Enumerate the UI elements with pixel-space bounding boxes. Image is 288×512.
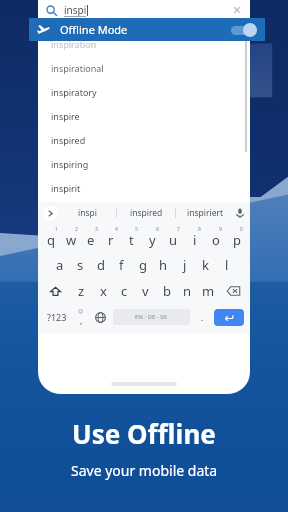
button[interactable]: j [174,252,195,278]
button[interactable]: d [90,252,111,278]
button[interactable]: 8 [184,224,205,252]
staticText: e [87,231,95,249]
staticText: h [159,256,168,274]
button[interactable]: x [92,278,114,304]
staticText: Offline Mode [60,22,128,37]
button[interactable]: inspiring [38,152,250,176]
staticText: inspiration [51,38,97,50]
staticText: , [80,314,83,326]
staticText: inspired [130,207,163,219]
button[interactable]: Airplane mode [29,18,265,41]
staticText: v [142,282,149,300]
staticText: Use Offline [72,416,216,451]
staticText: 4 [115,226,118,233]
staticText: 7 [177,226,180,233]
button[interactable]: f [111,252,132,278]
button[interactable]: v [135,278,156,304]
button[interactable]: Search [38,0,250,20]
button[interactable]: z [70,278,92,304]
button[interactable]: inspiriert [176,202,234,224]
staticText: inspired [51,134,86,146]
staticText: 0 [240,226,243,233]
staticText: s [77,256,84,274]
button[interactable]: 5 [121,224,142,252]
other: Search [46,5,57,16]
staticText: inspi [78,207,97,219]
button[interactable]: inspirational [38,56,250,80]
button[interactable]: Voice input [234,207,246,219]
staticText: 3 [95,226,98,233]
staticText: 6 [156,226,159,233]
staticText: x [100,282,107,300]
button[interactable]: inspi [58,202,116,224]
staticText: t [129,231,134,249]
staticText: f [119,256,124,274]
staticText: EN · DE · SK [135,313,168,321]
button[interactable]: 9 [205,224,226,252]
button[interactable]: inspire [38,104,250,128]
staticText: r [108,231,114,249]
button[interactable]: inspired [38,128,250,152]
button[interactable]: m [198,278,219,304]
staticText: inspirational [51,62,104,74]
button[interactable]: n [177,278,198,304]
staticText: g [139,256,147,274]
staticText: . [201,311,204,323]
button[interactable]: inspiratory [38,80,250,104]
button[interactable]: 7 [163,224,184,252]
button[interactable]: Enter [214,309,244,326]
button[interactable]: . [193,304,211,330]
button[interactable]: Expand suggestions [43,206,58,221]
button[interactable]: 3 [81,224,101,252]
staticText: a [56,256,64,274]
staticText: c [121,282,128,300]
button[interactable]: 4 [101,224,121,252]
button[interactable]: g [132,252,153,278]
button[interactable]: b [156,278,177,304]
other: Airplane mode [37,23,50,36]
staticText: inspi [64,3,87,17]
button[interactable]: Comma [72,304,90,330]
button[interactable]: c [114,278,135,304]
button[interactable]: inspirit [38,176,250,200]
staticText: j [183,256,187,274]
staticText: u [169,231,178,249]
staticText: ☺ [78,308,84,314]
staticText: b [163,282,171,300]
staticText: inspire [51,110,80,122]
button[interactable]: inspiration [38,32,250,56]
staticText: n [183,282,192,300]
staticText: o [212,231,220,249]
button[interactable]: ?123 [41,304,72,330]
staticText: l [225,256,229,274]
staticText: i [193,231,197,249]
button[interactable]: Backspace [219,278,247,304]
button[interactable]: EN · DE · SK [113,309,190,325]
staticText: w [66,231,77,249]
button[interactable]: s [70,252,90,278]
staticText: inspiriert [187,207,224,219]
staticText: Save your mobile data [71,461,218,480]
staticText: d [97,256,105,274]
button[interactable]: inspired [117,202,175,224]
button[interactable]: Clear [232,5,242,15]
staticText: inspirit [51,182,81,194]
button[interactable]: 6 [142,224,163,252]
staticText: 1 [55,226,58,233]
button[interactable]: a [50,252,70,278]
staticText: k [202,256,209,274]
staticText: inspiratory [51,86,97,98]
button[interactable]: h [153,252,174,278]
button[interactable]: Shift [41,278,70,304]
staticText: m [202,282,215,300]
button[interactable]: Change language [90,304,110,330]
button[interactable]: 0 [226,224,247,252]
staticText: SUGGESTIONS [124,22,165,30]
button[interactable]: 2 [61,224,81,252]
button[interactable]: k [195,252,216,278]
button[interactable]: l [216,252,237,278]
staticText: 2 [75,226,78,233]
staticText: ?123 [47,311,67,323]
staticText: q [47,231,55,249]
button[interactable]: 1 [41,224,61,252]
